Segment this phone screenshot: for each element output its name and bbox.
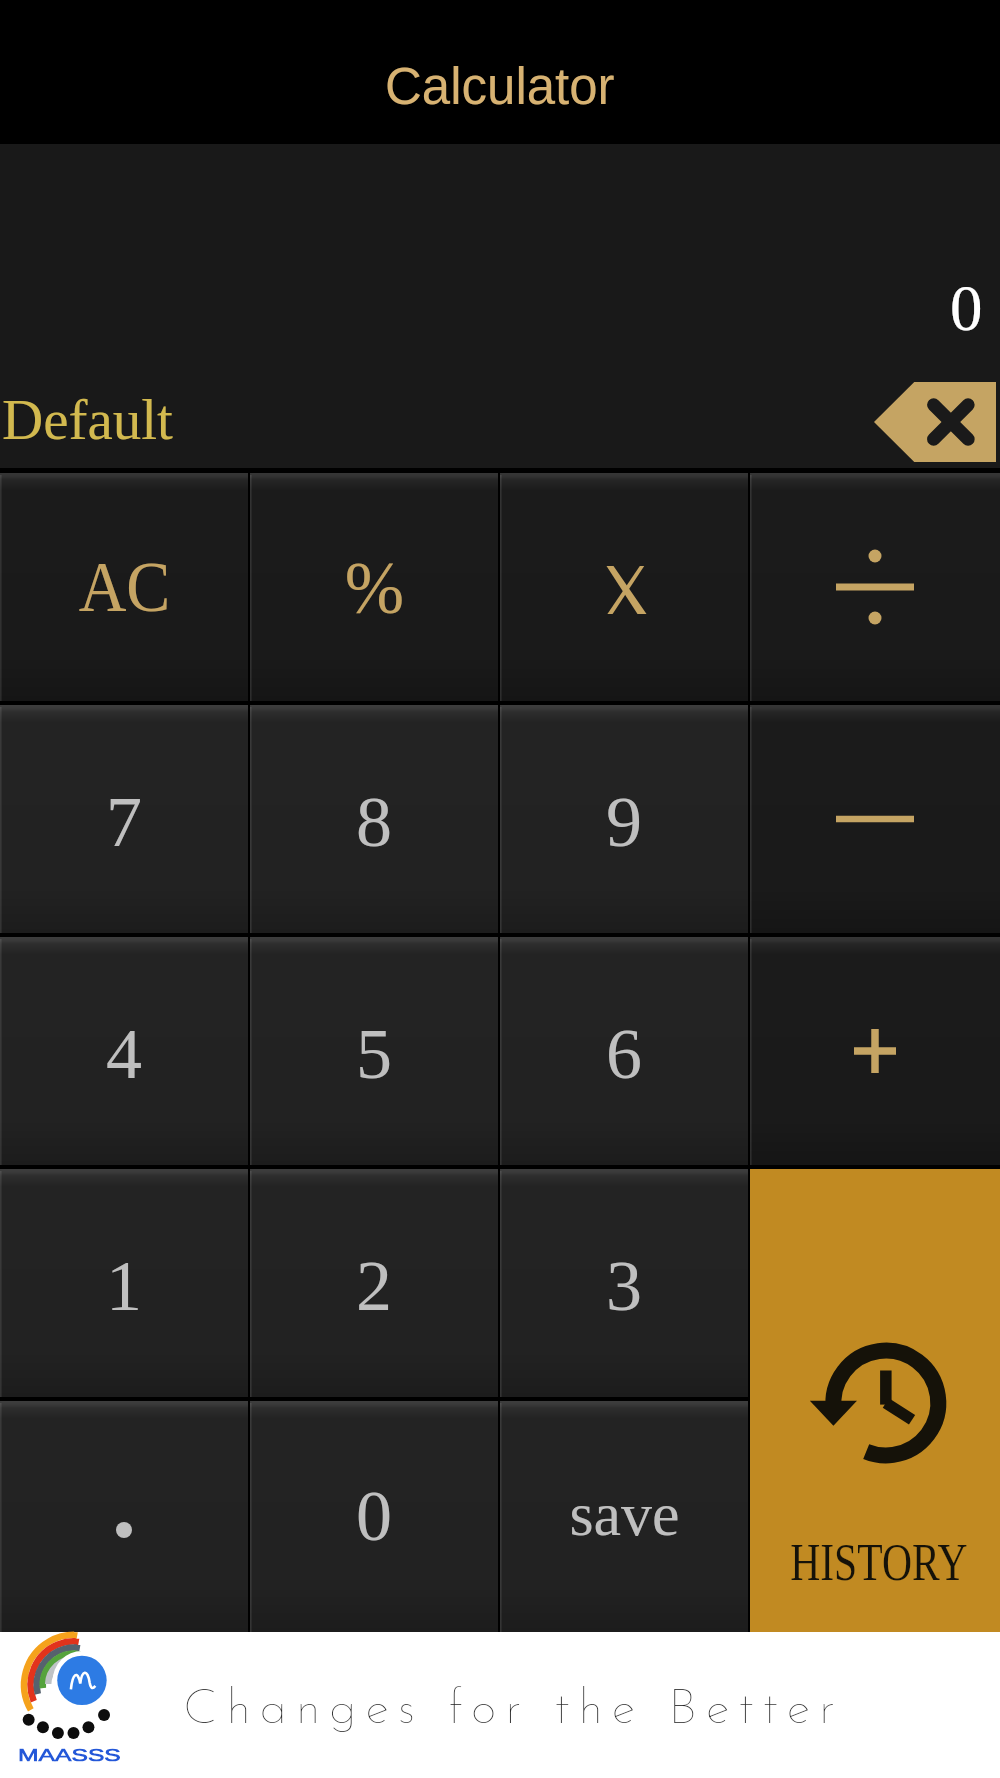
button[interactable]: 7 bbox=[0, 705, 248, 933]
button[interactable] bbox=[0, 1401, 248, 1632]
button[interactable]: 5 bbox=[250, 937, 498, 1165]
button[interactable]: 3 bbox=[500, 1169, 748, 1397]
staticText: 7 bbox=[106, 782, 142, 862]
button[interactable]: 9 bbox=[500, 705, 748, 933]
button[interactable] bbox=[750, 705, 1000, 933]
staticText: 8 bbox=[356, 782, 392, 862]
staticText: Default bbox=[2, 388, 173, 451]
button[interactable]: 8 bbox=[250, 705, 498, 933]
button[interactable]: 2 bbox=[250, 1169, 498, 1397]
button[interactable]: HISTORY bbox=[750, 1169, 1000, 1632]
button[interactable]: 4 bbox=[0, 937, 248, 1165]
staticText: MAASSS bbox=[18, 1746, 121, 1765]
button[interactable]: Backspace, delete last entry bbox=[874, 382, 996, 462]
button[interactable]: 6 bbox=[500, 937, 748, 1165]
staticText: % bbox=[345, 546, 404, 629]
staticText: 9 bbox=[606, 782, 642, 862]
staticText: 1 bbox=[106, 1246, 142, 1326]
button[interactable] bbox=[500, 473, 748, 701]
staticText: Calculator bbox=[385, 58, 615, 115]
staticText: 6 bbox=[606, 1014, 642, 1094]
button[interactable]: 0 bbox=[250, 1401, 498, 1632]
button[interactable]: AC bbox=[0, 473, 248, 701]
button[interactable] bbox=[750, 937, 1000, 1165]
staticText: AC bbox=[78, 548, 171, 627]
button[interactable] bbox=[750, 473, 1000, 701]
button[interactable]: save bbox=[500, 1401, 748, 1632]
staticText: HISTORY bbox=[790, 1534, 968, 1592]
staticText: 0 bbox=[950, 272, 983, 344]
button[interactable]: 1 bbox=[0, 1169, 248, 1397]
staticText: 3 bbox=[606, 1246, 642, 1326]
staticText: Changes for the Better bbox=[183, 1685, 845, 1735]
staticText: 2 bbox=[356, 1246, 392, 1326]
staticText: 0 bbox=[356, 1476, 392, 1556]
button[interactable]: % bbox=[250, 473, 498, 701]
staticText: 5 bbox=[356, 1014, 392, 1094]
staticText: save bbox=[569, 1480, 680, 1549]
staticText: 4 bbox=[106, 1014, 142, 1094]
